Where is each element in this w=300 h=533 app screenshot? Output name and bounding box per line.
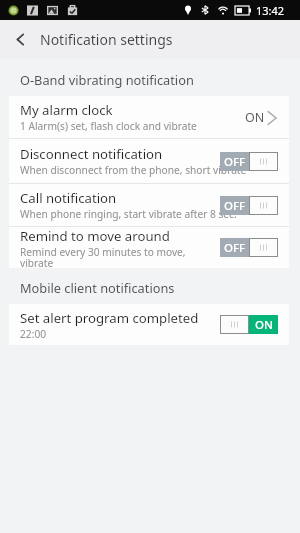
- staticText: ON: [245, 109, 265, 126]
- staticText: Notification settings: [40, 30, 173, 49]
- staticText: OFF: [224, 154, 246, 170]
- staticText: When disconnect from the phone, short vi…: [20, 163, 247, 177]
- staticText: When phone ringing, start vibrate after …: [20, 207, 237, 221]
- button[interactable]: Toggle off: [220, 196, 278, 215]
- staticText: Mobile client notifications: [20, 279, 175, 296]
- staticText: My alarm clock: [20, 101, 113, 119]
- button[interactable]: Disconnect notification: [9, 139, 289, 183]
- staticText: 1 Alarm(s) set, flash clock and vibrate: [20, 119, 197, 133]
- button[interactable]: My alarm clock: [9, 96, 289, 138]
- button[interactable]: Toggle on: [220, 315, 278, 334]
- button[interactable]: ON: [245, 109, 278, 126]
- staticText: Call notification: [20, 189, 117, 207]
- button[interactable]: Remind to move around: [9, 227, 289, 268]
- button[interactable]: Toggle off: [220, 238, 278, 257]
- staticText: OFF: [224, 240, 246, 256]
- staticText: 22:00: [20, 327, 47, 341]
- staticText: Remind every 30 minutes to move, vibrate: [20, 245, 202, 268]
- staticText: O-Band vibrating notification: [20, 71, 194, 88]
- button[interactable]: Toggle off: [220, 152, 278, 171]
- button[interactable]: Set alert program completed: [9, 304, 289, 345]
- staticText: OFF: [224, 198, 246, 214]
- button[interactable]: Back: [0, 20, 40, 59]
- staticText: ON: [255, 317, 273, 333]
- button[interactable]: Call notification: [9, 184, 289, 226]
- other: Open: [266, 110, 278, 126]
- staticText: Set alert program completed: [20, 309, 199, 327]
- staticText: Remind to move around: [20, 227, 170, 245]
- staticText: Disconnect notification: [20, 145, 163, 163]
- staticText: 13:42: [256, 3, 285, 18]
